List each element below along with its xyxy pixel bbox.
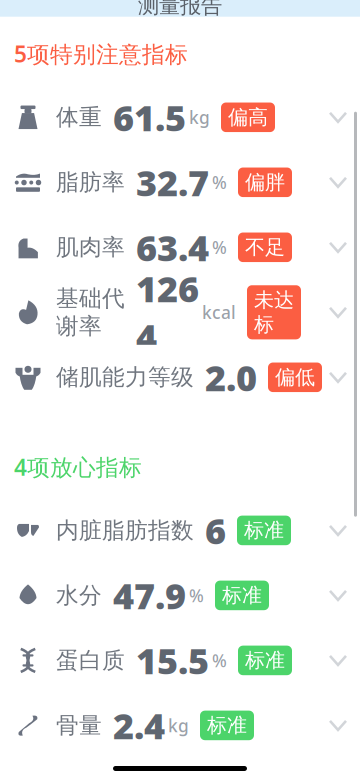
button[interactable]: 肌肉率 xyxy=(0,215,360,280)
staticText: 标准 xyxy=(245,648,285,673)
staticText: 体重 xyxy=(56,103,102,131)
staticText: 蛋白质 xyxy=(56,646,125,674)
staticText: 脂肪率 xyxy=(56,168,125,196)
staticText: 标准 xyxy=(222,583,262,608)
staticText: % xyxy=(189,584,204,607)
button[interactable]: 脂肪率 xyxy=(0,150,360,215)
staticText: 4项放心指标 xyxy=(14,452,142,482)
staticText: 标准 xyxy=(207,713,247,738)
staticText: 偏高 xyxy=(228,105,268,130)
staticText: 不足 xyxy=(245,235,285,260)
staticText: % xyxy=(212,649,227,672)
staticText: 储肌能力等级 xyxy=(56,363,194,391)
staticText: % xyxy=(212,171,227,194)
button[interactable]: 蛋白质 xyxy=(0,628,360,693)
staticText: 61.5 xyxy=(113,93,186,141)
staticText: 水分 xyxy=(56,581,102,609)
button[interactable]: 骨量 xyxy=(0,693,360,758)
staticText: 15.5 xyxy=(136,636,209,684)
staticText: kg xyxy=(168,714,189,737)
staticText: 偏低 xyxy=(275,365,315,390)
button[interactable]: 基础代谢率 xyxy=(0,280,360,345)
staticText: 6 xyxy=(205,506,226,554)
staticText: 肌肉率 xyxy=(56,233,125,261)
staticText: 2.0 xyxy=(205,353,257,401)
staticText: 未达标 xyxy=(254,288,294,337)
button[interactable]: 储肌能力等级 xyxy=(0,345,360,410)
staticText: 47.9 xyxy=(113,571,186,619)
button[interactable]: 测量报告 xyxy=(0,0,360,17)
staticText: 2.4 xyxy=(113,701,165,749)
staticText: 基础代谢率 xyxy=(56,284,125,340)
staticText: 5项特别注意指标 xyxy=(14,39,188,69)
button[interactable]: 体重 xyxy=(0,85,360,150)
staticText: kcal xyxy=(202,301,236,324)
staticText: 骨量 xyxy=(56,711,102,739)
staticText: 测量报告 xyxy=(138,0,222,19)
staticText: % xyxy=(212,236,227,259)
staticText: 32.7 xyxy=(136,158,209,206)
staticText: kg xyxy=(189,106,210,129)
staticText: 标准 xyxy=(244,518,284,543)
staticText: 1264 xyxy=(136,264,199,360)
button[interactable]: 内脏脂肪指数 xyxy=(0,498,360,563)
staticText: 偏胖 xyxy=(245,170,285,195)
staticText: 63.4 xyxy=(136,223,209,271)
button[interactable]: 水分 xyxy=(0,563,360,628)
staticText: 内脏脂肪指数 xyxy=(56,516,194,544)
